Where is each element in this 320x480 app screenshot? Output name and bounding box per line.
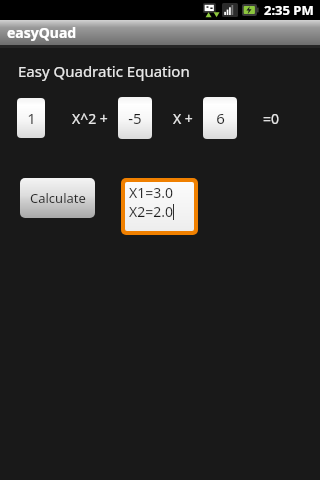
staticText: X1=3.0 xyxy=(129,183,173,202)
staticText: Easy Quadratic Equation xyxy=(18,61,190,81)
staticText: 1 xyxy=(27,108,36,128)
staticText: 6 xyxy=(216,108,225,128)
staticText: easyQuad xyxy=(7,23,77,42)
button[interactable]: 6 xyxy=(203,97,237,139)
button[interactable]: 1 xyxy=(17,98,45,138)
button[interactable]: X1=3.0 xyxy=(125,182,194,231)
staticText: =0 xyxy=(263,109,280,128)
staticText: 2:35 PM xyxy=(264,1,314,19)
staticText: X^2 + xyxy=(72,109,108,128)
button[interactable]: -5 xyxy=(118,97,152,139)
staticText: -5 xyxy=(128,108,142,128)
button[interactable]: Calculate xyxy=(20,178,95,218)
staticText: Calculate xyxy=(30,189,86,207)
staticText: X + xyxy=(173,109,193,128)
staticText: X2=2.0 xyxy=(129,202,173,221)
